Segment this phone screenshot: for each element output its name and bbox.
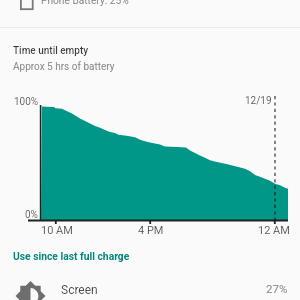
staticText: Screen <box>61 283 98 297</box>
staticText: Phone Battery: 25% <box>41 0 129 7</box>
staticText: Approx 5 hrs of battery <box>13 61 115 73</box>
staticText: 10 AM <box>41 224 73 237</box>
staticText: Time until empty <box>13 45 89 57</box>
button[interactable]: Battery <box>0 0 300 14</box>
button[interactable]: Use since last full charge <box>0 246 300 268</box>
staticText: 100% <box>14 96 39 108</box>
other: Battery <box>0 0 300 14</box>
staticText: 12 AM <box>258 224 290 237</box>
staticText: Use since last full charge <box>13 250 130 262</box>
button[interactable]: Screen <box>0 270 300 300</box>
staticText: 12/19 <box>245 95 272 107</box>
staticText: 4 PM <box>138 224 164 237</box>
staticText: 0% <box>25 209 38 221</box>
staticText: 27% <box>266 282 288 295</box>
